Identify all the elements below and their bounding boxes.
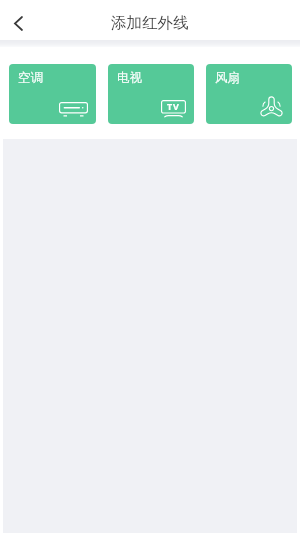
staticText: 空调 [18,70,43,86]
button[interactable]: 空调 [9,64,96,124]
button[interactable]: Back [0,3,40,43]
staticText: 电视 [117,70,142,86]
staticText: 风扇 [215,70,240,86]
button[interactable]: 电视 [108,64,194,124]
button[interactable]: 风扇 [206,64,292,124]
staticText: TV [167,100,180,112]
staticText: 添加红外线 [111,13,189,33]
